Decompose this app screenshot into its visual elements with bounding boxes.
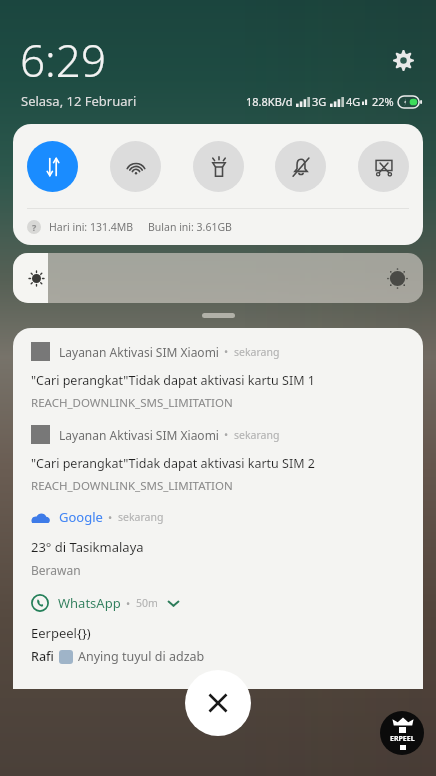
staticText: 6:29 xyxy=(20,30,107,90)
staticText: 50m xyxy=(136,596,158,610)
staticText: • xyxy=(224,344,229,359)
staticText: Rafi xyxy=(31,648,54,665)
button[interactable]: Expand notification xyxy=(165,595,181,611)
button[interactable]: Screenshot xyxy=(358,141,409,192)
button[interactable]: Flashlight xyxy=(193,141,244,192)
staticText: Berawan xyxy=(31,562,81,578)
staticText: 3G xyxy=(312,94,327,109)
staticText: REACH_DOWNLINK_SMS_LIMITATION xyxy=(31,395,233,411)
staticText: 22% xyxy=(372,94,394,109)
staticText: 18.8KB/d xyxy=(246,94,293,109)
staticText: ? xyxy=(32,221,37,233)
staticText: Anying tuyul di adzab xyxy=(78,648,205,665)
staticText: 4G xyxy=(346,94,361,109)
button[interactable]: ERPEEL chat bubble xyxy=(380,711,424,755)
staticText: Layanan Aktivasi SIM Xiaomi xyxy=(59,427,219,443)
button[interactable]: Layanan Aktivasi SIM Xiaomi xyxy=(13,342,423,411)
button[interactable]: WhatsApp xyxy=(13,594,423,665)
staticText: Layanan Aktivasi SIM Xiaomi xyxy=(59,344,219,360)
staticText: Hari ini: 131.4MB xyxy=(49,220,134,234)
staticText: sekarang xyxy=(234,345,280,359)
staticText: "Cari perangkat"Tidak dapat aktivasi kar… xyxy=(31,455,315,472)
staticText: Eerpeel{}) xyxy=(31,624,91,642)
staticText: REACH_DOWNLINK_SMS_LIMITATION xyxy=(31,478,233,494)
staticText: • xyxy=(108,510,113,525)
staticText: Google xyxy=(59,508,103,526)
button[interactable]: Layanan Aktivasi SIM Xiaomi xyxy=(13,425,423,494)
button[interactable]: Wi-Fi xyxy=(110,141,161,192)
button[interactable]: Silent mode xyxy=(275,141,326,192)
staticText: "Cari perangkat"Tidak dapat aktivasi kar… xyxy=(31,372,315,389)
staticText: sekarang xyxy=(118,510,164,524)
button[interactable]: Google xyxy=(13,508,423,578)
staticText: • xyxy=(126,596,131,611)
staticText: Selasa, 12 Februari xyxy=(21,92,137,110)
staticText: Bulan ini: 3.61GB xyxy=(148,220,232,234)
staticText: ERPEEL xyxy=(390,734,415,744)
staticText: sekarang xyxy=(234,428,280,442)
button[interactable]: Clear all notifications xyxy=(185,670,251,736)
button[interactable]: Settings xyxy=(386,43,420,77)
button[interactable]: Mobile data xyxy=(27,141,78,192)
staticText: WhatsApp xyxy=(58,594,121,612)
button[interactable]: Brightness xyxy=(13,253,423,303)
staticText: • xyxy=(224,427,229,442)
button[interactable]: Expand quick settings xyxy=(202,313,235,318)
staticText: 23° di Tasikmalaya xyxy=(31,538,144,556)
